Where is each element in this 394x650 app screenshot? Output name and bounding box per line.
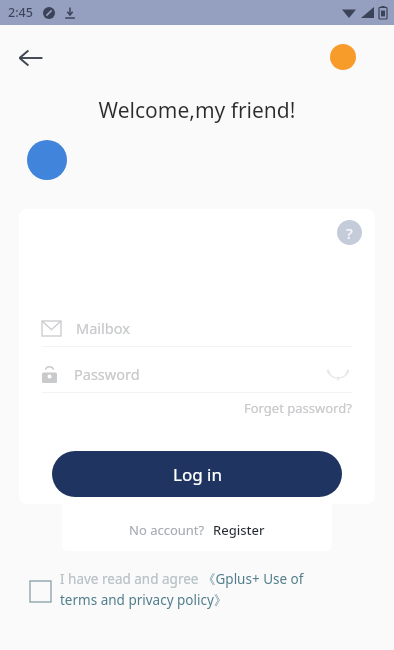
button[interactable]: Mailbox bbox=[42, 310, 352, 346]
staticText: Mailbox bbox=[76, 318, 130, 338]
staticText: 2:45 bbox=[8, 4, 33, 21]
staticText: terms and privacy policy》 bbox=[60, 591, 228, 609]
button[interactable]: Agree to terms bbox=[30, 570, 370, 609]
button[interactable]: Forget password? bbox=[244, 399, 352, 417]
button[interactable]: Back bbox=[10, 37, 52, 79]
staticText: Welcome,my friend! bbox=[0, 96, 394, 125]
staticText: I have read and agree bbox=[60, 570, 202, 588]
button[interactable]: Show password bbox=[324, 360, 352, 388]
other: Agree to terms bbox=[30, 581, 51, 602]
staticText: Register bbox=[213, 521, 265, 539]
staticText: Password bbox=[74, 364, 140, 384]
button[interactable]: No account? bbox=[129, 521, 265, 539]
staticText: No account? bbox=[129, 521, 205, 539]
button[interactable]: Log in bbox=[52, 451, 342, 497]
staticText: ? bbox=[346, 223, 353, 243]
staticText: Log in bbox=[173, 463, 222, 486]
staticText: 《Gplus+ Use of bbox=[202, 570, 304, 588]
button[interactable]: Profile bbox=[330, 44, 356, 70]
button[interactable]: Password bbox=[42, 356, 352, 392]
staticText: Forget password? bbox=[244, 399, 352, 417]
button[interactable]: Avatar bbox=[27, 140, 67, 180]
button[interactable]: Help bbox=[337, 220, 362, 245]
